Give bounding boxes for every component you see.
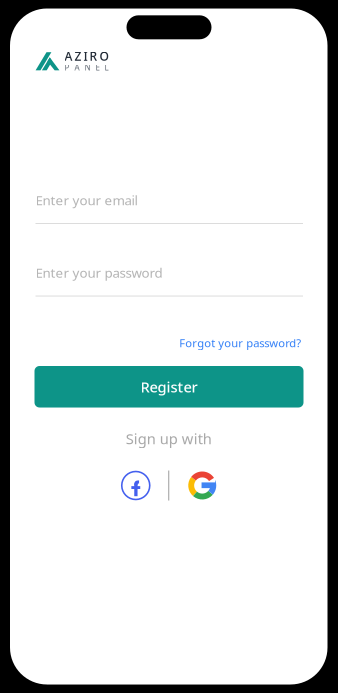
button[interactable]: Sign up with Facebook	[121, 471, 150, 500]
staticText: Enter your email	[35, 191, 137, 209]
button[interactable]: Forgot your password?	[169, 336, 301, 349]
staticText: Enter your password	[35, 264, 162, 281]
button[interactable]: Enter your email	[35, 193, 303, 224]
staticText: Sign up with	[126, 429, 212, 448]
staticText: Forgot your password?	[179, 335, 301, 351]
staticText: P A N E L	[64, 62, 108, 73]
staticText: Register	[140, 377, 197, 396]
button[interactable]: Enter your password	[35, 265, 303, 296]
staticText: A Z I R O	[64, 48, 108, 64]
button[interactable]: Sign up with Google	[188, 471, 216, 499]
button[interactable]: Register	[34, 366, 303, 407]
